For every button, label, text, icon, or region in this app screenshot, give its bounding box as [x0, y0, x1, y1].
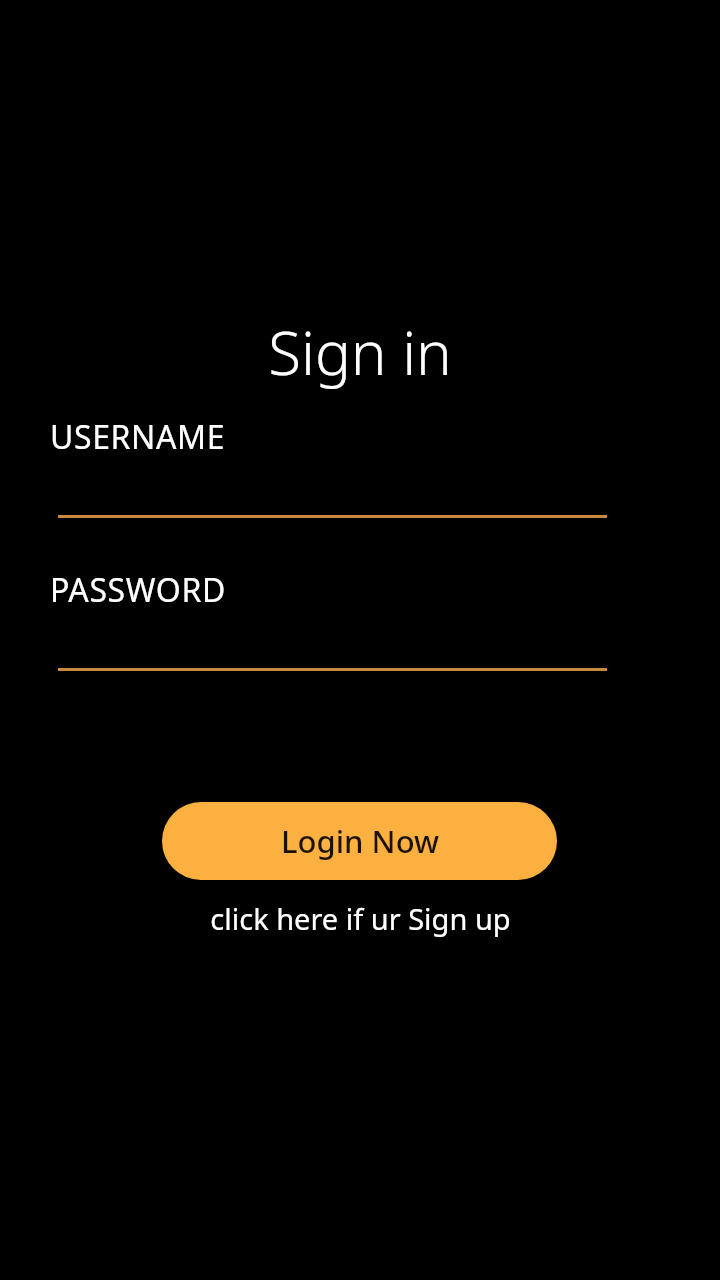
staticText: Sign in [0, 311, 720, 393]
button[interactable]: Login Now [162, 802, 557, 880]
button[interactable] [58, 462, 607, 518]
staticText: click here if ur Sign up [210, 899, 511, 938]
staticText: Login Now [281, 820, 439, 862]
staticText: USERNAME [50, 415, 226, 459]
button[interactable]: click here if ur Sign up [0, 894, 720, 942]
staticText: PASSWORD [50, 568, 226, 612]
button[interactable] [58, 615, 607, 671]
